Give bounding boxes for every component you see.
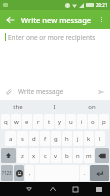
- button[interactable]: Home: [41, 182, 64, 196]
- button[interactable]: ,: [25, 165, 34, 181]
- button[interactable]: the: [0, 100, 36, 113]
- staticText: ?123: [2, 170, 12, 176]
- button[interactable]: delete: [95, 148, 109, 163]
- button[interactable]: k: [84, 131, 94, 146]
- button[interactable]: Enter: [90, 165, 109, 181]
- staticText: f: [44, 135, 47, 143]
- staticText: v: [54, 152, 58, 160]
- staticText: o: [91, 118, 95, 126]
- staticText: h: [65, 135, 69, 143]
- staticText: j: [77, 135, 79, 143]
- button[interactable]: Hide keyboard: [87, 182, 110, 196]
- button[interactable]: h: [62, 131, 72, 146]
- staticText: p: [102, 118, 106, 126]
- button[interactable]: Attach: [0, 83, 17, 100]
- staticText: 20:21: [96, 2, 108, 8]
- button[interactable]: n: [73, 148, 83, 163]
- staticText: Enter one or more recipients: [8, 33, 96, 42]
- staticText: x: [32, 152, 36, 160]
- button[interactable]: a: [5, 131, 16, 146]
- staticText: s: [21, 135, 24, 143]
- button[interactable]: I: [36, 100, 73, 113]
- button[interactable]: w: [11, 114, 21, 129]
- button[interactable]: d: [29, 131, 39, 146]
- staticText: w: [14, 118, 19, 126]
- staticText: e: [25, 118, 29, 126]
- button[interactable]: Send: [92, 83, 110, 100]
- button[interactable]: x: [29, 148, 39, 163]
- staticText: I: [53, 103, 56, 111]
- button[interactable]: on: [73, 100, 110, 113]
- button[interactable]: u: [66, 114, 76, 129]
- staticText: z: [21, 152, 24, 160]
- staticText: y: [58, 118, 62, 126]
- staticText: a: [9, 135, 13, 143]
- staticText: m: [86, 152, 92, 160]
- button[interactable]: emoji: [14, 165, 24, 181]
- button[interactable]: t: [44, 114, 54, 129]
- button[interactable]: z: [17, 148, 28, 163]
- button[interactable]: q: [1, 114, 10, 129]
- staticText: .: [84, 169, 86, 177]
- staticText: on: [88, 103, 96, 111]
- button[interactable]: Recents: [64, 182, 87, 196]
- button[interactable]: m: [84, 148, 94, 163]
- staticText: the: [13, 103, 23, 111]
- button[interactable]: v: [51, 148, 61, 163]
- staticText: Write new message: [21, 15, 93, 25]
- button[interactable]: e: [22, 114, 32, 129]
- staticText: t: [48, 118, 51, 126]
- staticText: i: [81, 118, 83, 126]
- staticText: g: [54, 135, 58, 143]
- button[interactable]: r: [33, 114, 43, 129]
- staticText: k: [87, 135, 91, 143]
- staticText: q: [4, 118, 8, 126]
- staticText: b: [65, 152, 69, 160]
- staticText: ,: [29, 169, 31, 177]
- staticText: l: [99, 135, 101, 143]
- button[interactable]: p: [99, 114, 109, 129]
- button[interactable]: More options: [93, 11, 110, 28]
- button[interactable]: Back: [17, 182, 41, 196]
- staticText: n: [76, 152, 80, 160]
- staticText: c: [44, 152, 47, 160]
- button[interactable]: l: [95, 131, 105, 146]
- staticText: Write message: [18, 87, 92, 96]
- button[interactable]: b: [62, 148, 72, 163]
- button[interactable]: c: [40, 148, 50, 163]
- staticText: u: [69, 118, 73, 126]
- button[interactable]: g: [51, 131, 61, 146]
- button[interactable]: Enter one or more recipients: [0, 29, 110, 45]
- button[interactable]: Back: [0, 10, 19, 29]
- button[interactable]: o: [88, 114, 98, 129]
- button[interactable]: j: [73, 131, 83, 146]
- button[interactable]: .: [80, 165, 89, 181]
- button[interactable]: shift: [1, 148, 16, 163]
- button[interactable]: f: [40, 131, 50, 146]
- staticText: d: [32, 135, 36, 143]
- staticText: r: [37, 118, 40, 126]
- button[interactable]: symbols: [1, 165, 13, 181]
- button[interactable]: y: [55, 114, 65, 129]
- button[interactable]: s: [17, 131, 28, 146]
- button[interactable]: i: [77, 114, 87, 129]
